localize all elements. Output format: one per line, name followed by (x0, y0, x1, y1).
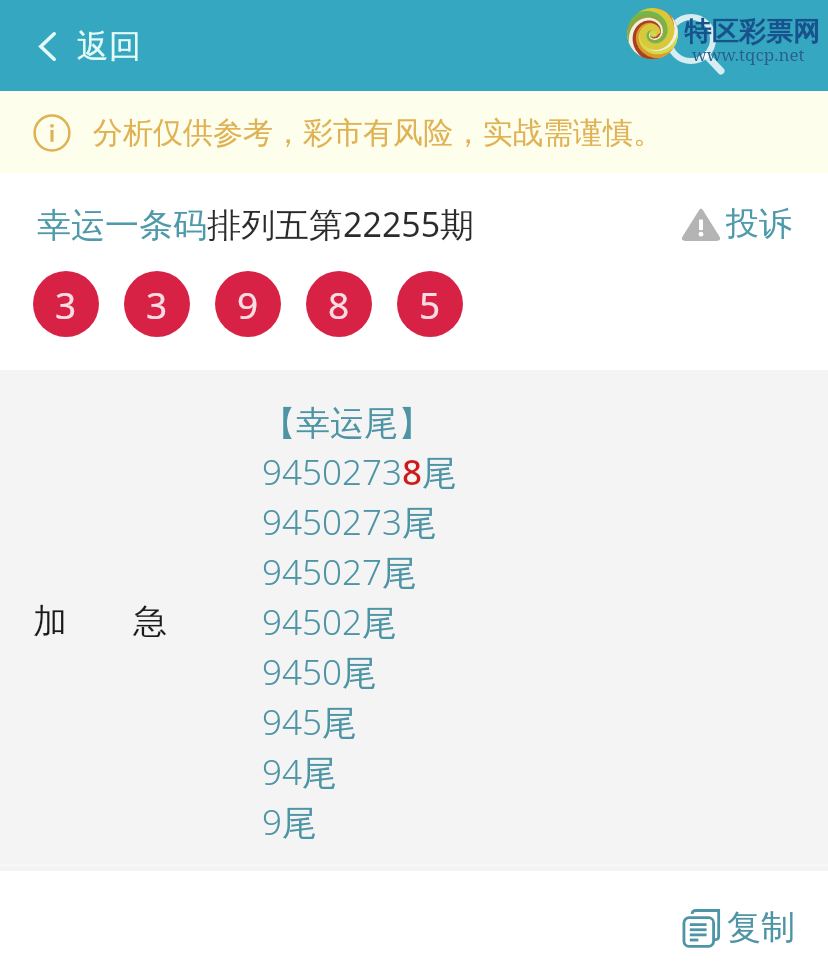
staticText: 投诉 (726, 203, 792, 245)
staticText: 9450尾 (262, 648, 377, 696)
button[interactable]: 复制 Copy (682, 906, 828, 949)
staticText: 【幸运尾】 (262, 402, 432, 445)
staticText: 8 (328, 279, 350, 329)
staticText: 返回 (77, 26, 141, 66)
staticText: 945尾 (262, 698, 357, 746)
staticText: 9尾 (262, 798, 317, 846)
staticText: 5 (419, 279, 441, 329)
button[interactable]: 返回 Back (0, 14, 161, 78)
staticText: 分析仅供参考，彩市有风险，实战需谨慎。 (93, 114, 663, 152)
staticText: 3 (146, 279, 168, 329)
staticText: 94502738尾 (262, 448, 457, 496)
staticText: 94502尾 (262, 598, 397, 646)
staticText: 945027尾 (262, 548, 417, 596)
staticText: www.tqcp.net (692, 43, 805, 66)
staticText: 9 (237, 279, 259, 329)
staticText: 加 (33, 600, 67, 643)
staticText: 9450273尾 (262, 498, 437, 546)
staticText: 94尾 (262, 748, 337, 796)
staticText: 幸运一条码排列五第22255期 (37, 201, 475, 241)
staticText: 3 (55, 279, 77, 329)
button[interactable]: 投诉 Report (680, 203, 828, 245)
staticText: 特区彩票网 (684, 15, 820, 49)
staticText: 急 (133, 600, 167, 643)
staticText: 复制 (727, 906, 795, 949)
button[interactable]: 幸运一条码排列五第22255期 (0, 191, 487, 251)
